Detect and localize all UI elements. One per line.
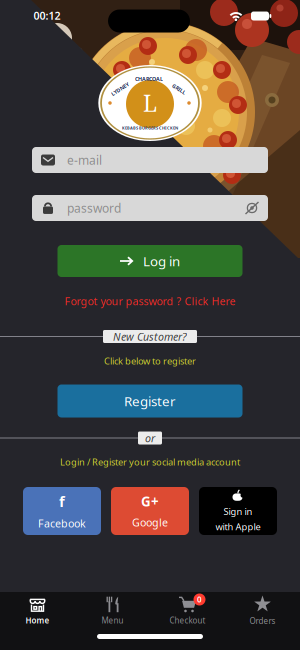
staticText: e-mail bbox=[67, 152, 102, 168]
staticText: Google bbox=[132, 515, 168, 529]
staticText: GRILL bbox=[171, 85, 186, 93]
staticText: CHARCOAL bbox=[135, 75, 163, 83]
staticText: 00:12 bbox=[33, 8, 60, 23]
staticText: Orders bbox=[249, 616, 275, 626]
staticText: KEBABS BURGERS CHICKEN bbox=[122, 125, 178, 131]
staticText: L bbox=[143, 88, 157, 118]
staticText: LYDNEY bbox=[110, 85, 130, 93]
staticText: f bbox=[59, 492, 65, 511]
button[interactable]: Menu bbox=[75, 594, 150, 628]
staticText: Checkout bbox=[169, 615, 205, 626]
staticText: G+ bbox=[141, 493, 159, 510]
button[interactable]: Checkout bbox=[150, 594, 225, 628]
staticText: password bbox=[67, 200, 121, 216]
staticText: Click below to register bbox=[104, 355, 196, 367]
staticText: New Customer? bbox=[113, 329, 187, 344]
staticText: Register bbox=[124, 392, 176, 410]
button[interactable]: Log in bbox=[57, 245, 242, 277]
button[interactable]: Home bbox=[0, 594, 75, 628]
staticText: Home bbox=[25, 615, 49, 626]
staticText: 0 bbox=[197, 594, 202, 605]
staticText: Menu bbox=[101, 615, 123, 626]
button[interactable]: Show password bbox=[244, 201, 260, 215]
button[interactable]: Forgot your password ? Click Here bbox=[64, 294, 235, 308]
staticText: or bbox=[145, 431, 155, 445]
button[interactable]: f bbox=[23, 487, 101, 535]
button[interactable]: G+ bbox=[111, 487, 189, 535]
staticText: Login / Register your social media accou… bbox=[60, 456, 240, 468]
staticText: with Apple bbox=[215, 520, 260, 533]
staticText: Sign in bbox=[223, 505, 252, 517]
staticText: Log in bbox=[143, 252, 180, 270]
button[interactable]: Sign in bbox=[199, 487, 277, 535]
staticText: Facebook bbox=[38, 516, 86, 530]
staticText: Forgot your password ? Click Here bbox=[64, 294, 235, 308]
button[interactable]: Register bbox=[57, 384, 242, 417]
button[interactable]: Orders bbox=[225, 594, 300, 628]
